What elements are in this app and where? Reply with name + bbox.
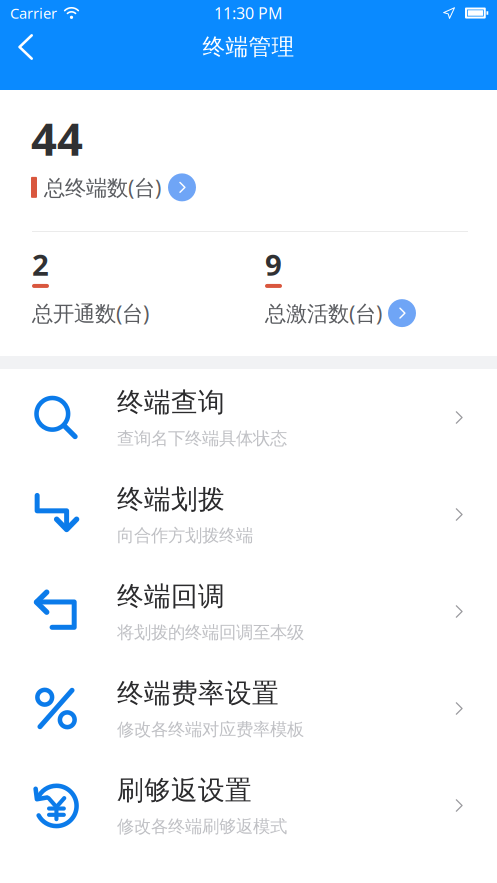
button[interactable]: 终端划拨: [0, 466, 497, 563]
button[interactable]: 查看详情: [388, 299, 416, 327]
staticText: 修改各终端对应费率模板: [117, 719, 304, 740]
staticText: 查询名下终端具体状态: [117, 428, 287, 449]
staticText: 终端划拨: [117, 483, 225, 516]
staticText: 终端查询: [117, 386, 225, 419]
button[interactable]: 终端费率设置: [0, 660, 497, 757]
staticText: 修改各终端刷够返模式: [117, 816, 287, 837]
staticText: 2: [32, 245, 49, 284]
staticText: 总开通数(台): [32, 299, 149, 327]
button[interactable]: 刷够返设置: [0, 757, 497, 854]
button[interactable]: 查看详情: [168, 173, 196, 201]
staticText: Carrier: [10, 3, 57, 23]
button[interactable]: 终端查询: [0, 369, 497, 466]
staticText: 9: [265, 245, 282, 284]
staticText: 向合作方划拨终端: [117, 525, 253, 546]
staticText: 终端回调: [117, 580, 225, 613]
staticText: 总激活数(台): [265, 299, 382, 327]
staticText: 11:30 PM: [214, 2, 283, 24]
button[interactable]: 返回: [0, 25, 52, 69]
staticText: 终端费率设置: [117, 677, 279, 710]
staticText: 刷够返设置: [117, 774, 252, 807]
staticText: 44: [31, 108, 83, 168]
staticText: 将划拨的终端回调至本级: [117, 622, 304, 643]
staticText: 总终端数(台): [44, 173, 161, 201]
button[interactable]: 终端回调: [0, 563, 497, 660]
staticText: 终端管理: [202, 33, 294, 61]
